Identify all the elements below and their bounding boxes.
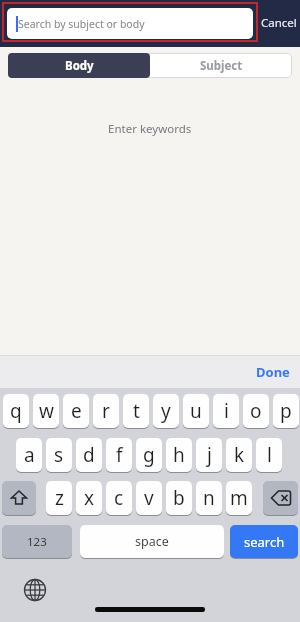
button[interactable]: u (183, 394, 209, 428)
staticText: z (55, 485, 64, 511)
button[interactable]: g (136, 438, 162, 472)
staticText: Done (256, 363, 290, 381)
staticText: Body (65, 58, 94, 74)
staticText: j (207, 442, 212, 468)
button[interactable]: q (3, 394, 29, 428)
button[interactable]: Done (250, 358, 296, 385)
button[interactable]: 123 (2, 525, 72, 558)
staticText: u (190, 398, 202, 424)
button[interactable]: l (256, 438, 282, 472)
button[interactable] (263, 481, 298, 515)
button[interactable]: r (93, 394, 119, 428)
staticText: Cancel (261, 15, 297, 31)
staticText: space (135, 533, 169, 550)
button[interactable]: search (230, 525, 298, 558)
button[interactable]: Cancel (258, 8, 300, 38)
staticText: l (267, 442, 272, 468)
staticText: Search by subject or body (18, 17, 145, 31)
staticText: a (24, 442, 35, 468)
staticText: s (54, 442, 64, 468)
staticText: search (244, 533, 285, 551)
staticText: m (230, 485, 248, 511)
button[interactable]: space (80, 525, 224, 558)
button[interactable]: p (273, 394, 299, 428)
staticText: p (280, 398, 292, 424)
button[interactable]: h (166, 438, 192, 472)
staticText: q (10, 398, 22, 424)
button[interactable]: w (33, 394, 59, 428)
button[interactable]: i (213, 394, 239, 428)
staticText: e (71, 398, 82, 424)
staticText: Subject (200, 58, 243, 74)
button[interactable]: b (166, 481, 192, 515)
staticText: c (114, 485, 124, 511)
staticText: n (203, 485, 215, 511)
staticText: x (84, 485, 95, 511)
staticText: Enter keywords (108, 121, 192, 137)
staticText: w (39, 398, 54, 424)
button[interactable]: y (153, 394, 179, 428)
button[interactable]: Body (8, 53, 150, 78)
staticText: v (144, 485, 154, 511)
staticText: k (234, 442, 245, 468)
staticText: 123 (27, 534, 47, 550)
button[interactable]: x (76, 481, 102, 515)
button[interactable]: z (46, 481, 72, 515)
button[interactable]: c (106, 481, 132, 515)
staticText: t (133, 398, 140, 424)
button[interactable]: f (106, 438, 132, 472)
staticText: d (83, 442, 95, 468)
staticText: i (224, 398, 229, 424)
staticText: f (116, 442, 123, 468)
button[interactable] (2, 481, 36, 515)
button[interactable]: k (226, 438, 252, 472)
staticText: y (161, 398, 171, 424)
button[interactable]: e (63, 394, 89, 428)
staticText: o (250, 398, 262, 424)
button[interactable]: o (243, 394, 269, 428)
button[interactable]: t (123, 394, 149, 428)
button[interactable]: s (46, 438, 72, 472)
button[interactable]: n (196, 481, 222, 515)
button[interactable] (21, 576, 49, 604)
button[interactable]: d (76, 438, 102, 472)
button[interactable]: v (136, 481, 162, 515)
button[interactable]: m (226, 481, 252, 515)
staticText: r (102, 398, 110, 424)
button[interactable]: Search by subject or body (7, 8, 253, 39)
staticText: b (173, 485, 185, 511)
staticText: g (143, 442, 155, 468)
staticText: h (173, 442, 185, 468)
button[interactable]: Subject (150, 53, 292, 78)
button[interactable]: j (196, 438, 222, 472)
button[interactable]: a (16, 438, 42, 472)
